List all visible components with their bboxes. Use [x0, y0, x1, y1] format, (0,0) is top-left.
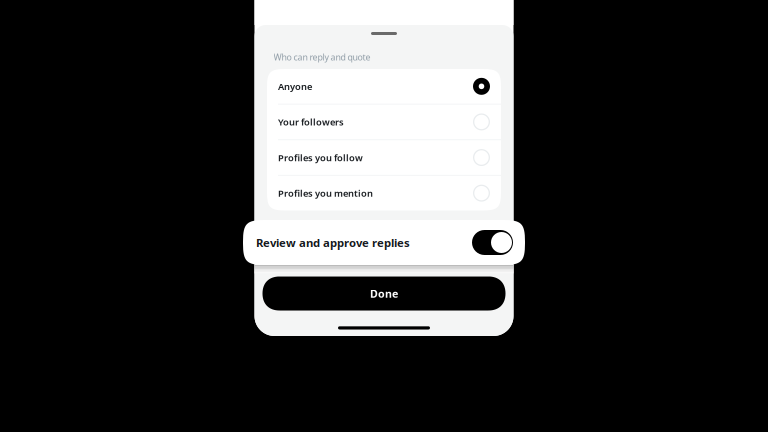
button[interactable]: Anyone — [267, 69, 501, 104]
button[interactable]: Profiles you follow — [267, 140, 501, 175]
staticText: Anyone — [278, 80, 312, 92]
button[interactable]: Review and approve replies — [243, 220, 525, 265]
button[interactable]: Your followers — [267, 105, 501, 139]
staticText: Who can reply and quote — [273, 51, 370, 63]
staticText: Profiles you follow — [278, 151, 363, 164]
button[interactable]: Profiles you mention — [267, 176, 501, 210]
button[interactable]: Done — [262, 276, 505, 310]
staticText: Your followers — [278, 116, 344, 128]
staticText: Profiles you mention — [278, 187, 373, 199]
staticText: Done — [370, 286, 398, 301]
staticText: Review and approve replies — [256, 235, 410, 250]
